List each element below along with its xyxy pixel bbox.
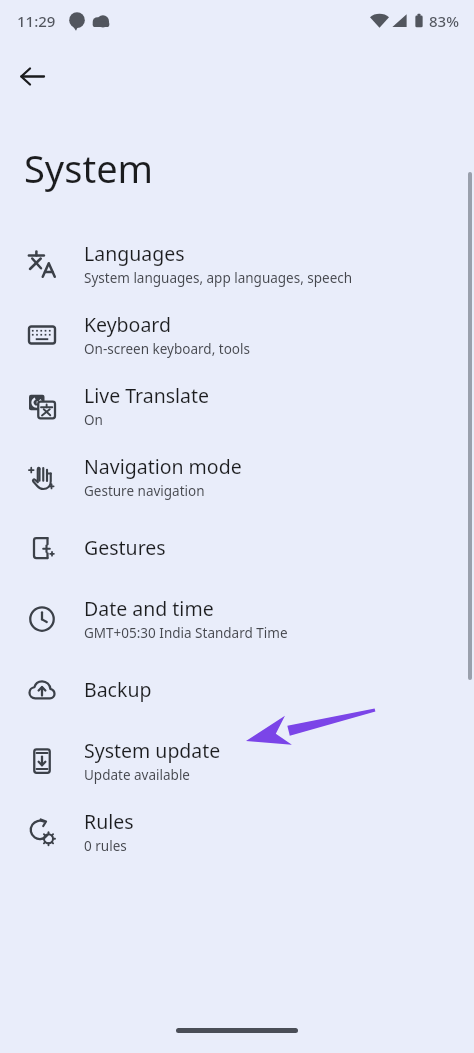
- staticText: 0 rules: [84, 837, 127, 855]
- button[interactable]: Live Translate: [0, 370, 474, 441]
- button[interactable]: Back: [8, 52, 56, 100]
- button[interactable]: Navigation mode: [0, 441, 474, 512]
- staticText: Backup: [84, 676, 152, 703]
- staticText: Gestures: [84, 534, 166, 561]
- staticText: Keyboard: [84, 311, 172, 338]
- staticText: System update: [84, 737, 221, 764]
- staticText: System: [24, 142, 154, 194]
- staticText: Update available: [84, 766, 190, 784]
- button[interactable]: System update: [0, 725, 474, 796]
- button[interactable]: Gestures: [0, 512, 474, 583]
- staticText: GMT+05:30 India Standard Time: [84, 624, 288, 642]
- staticText: On-screen keyboard, tools: [84, 340, 250, 358]
- staticText: 83%: [429, 11, 459, 31]
- staticText: 11:29: [17, 11, 56, 31]
- staticText: Languages: [84, 240, 185, 267]
- staticText: Date and time: [84, 595, 214, 622]
- button[interactable]: Rules: [0, 796, 474, 867]
- button[interactable]: Backup: [0, 654, 474, 725]
- staticText: System languages, app languages, speech: [84, 269, 353, 287]
- button[interactable]: Date and time: [0, 583, 474, 654]
- button[interactable]: Languages: [0, 228, 474, 299]
- staticText: On: [84, 411, 103, 429]
- staticText: Live Translate: [84, 382, 210, 409]
- staticText: Navigation mode: [84, 453, 242, 480]
- staticText: Rules: [84, 808, 134, 835]
- staticText: Gesture navigation: [84, 482, 205, 500]
- button[interactable]: Keyboard: [0, 299, 474, 370]
